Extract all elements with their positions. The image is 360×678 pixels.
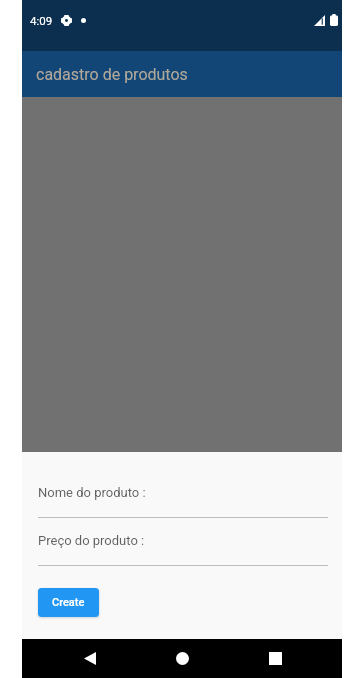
staticText: Preço do produto : (38, 533, 145, 548)
staticText: cadastro de produtos (36, 65, 188, 84)
button[interactable]: Back (69, 639, 111, 678)
staticText: 4:09 (30, 14, 53, 27)
button[interactable]: Home (161, 639, 203, 678)
staticText: Nome do produto : (38, 485, 146, 500)
button[interactable]: Create (38, 588, 99, 617)
staticText: Create (52, 596, 85, 609)
button[interactable]: Recent apps (254, 639, 296, 678)
